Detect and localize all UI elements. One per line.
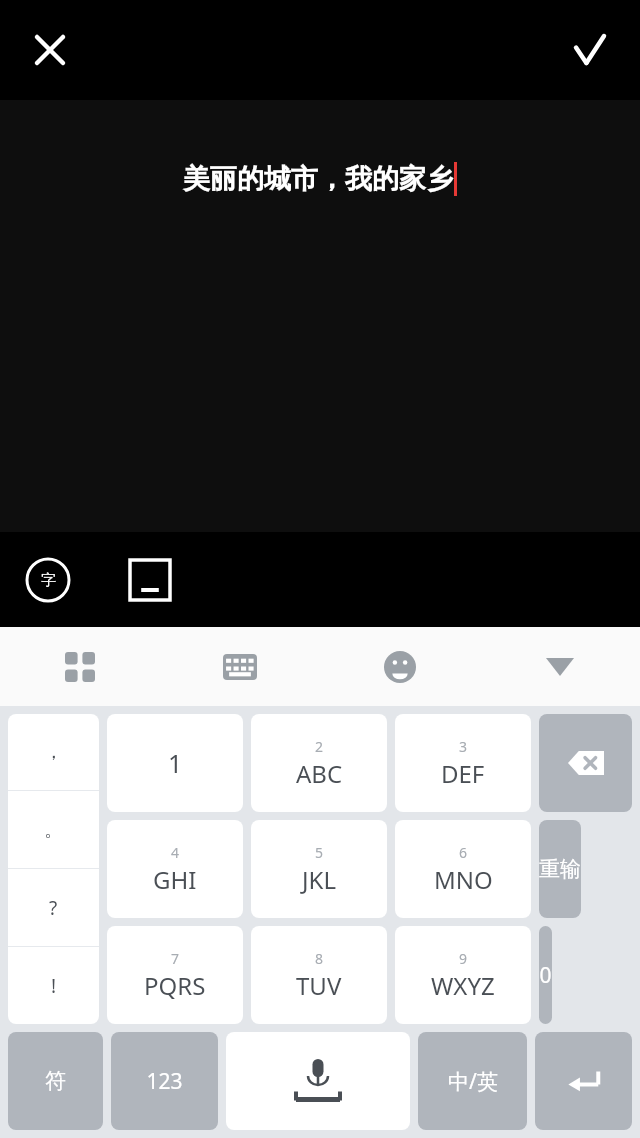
staticText: ! — [51, 973, 57, 999]
button[interactable]: 6 — [395, 820, 531, 918]
staticText: 4 — [171, 843, 180, 862]
staticText: 123 — [146, 1067, 183, 1096]
button[interactable]: 5 — [251, 820, 387, 918]
staticText: JKL — [302, 863, 336, 896]
button[interactable]: 8 — [251, 926, 387, 1024]
staticText: TUV — [296, 969, 342, 1002]
staticText: 符 — [45, 1068, 66, 1094]
staticText: WXYZ — [431, 969, 495, 1002]
button[interactable]: 4 — [107, 820, 243, 918]
button[interactable]: ? — [8, 869, 99, 946]
staticText: 美丽的城市，我的家乡 — [183, 162, 453, 196]
button[interactable]: 7 — [107, 926, 243, 1024]
staticText: ABC — [296, 757, 343, 790]
staticText: 字 — [41, 571, 56, 590]
button[interactable]: 中/英 — [418, 1032, 527, 1130]
staticText: 6 — [459, 843, 468, 862]
button[interactable]: ! — [8, 947, 99, 1024]
staticText: GHI — [153, 863, 197, 896]
button[interactable]: 123 — [111, 1032, 218, 1130]
button[interactable]: Close — [18, 18, 82, 82]
staticText: DEF — [441, 757, 485, 790]
button[interactable]: Confirm — [558, 18, 622, 82]
staticText: 8 — [315, 949, 324, 968]
staticText: MNO — [434, 863, 493, 896]
staticText: 2 — [315, 737, 324, 756]
button[interactable]: Space and voice input — [226, 1032, 410, 1130]
staticText: 0 — [539, 961, 552, 990]
staticText: 。 — [44, 818, 63, 842]
button[interactable]: 。 — [8, 791, 99, 868]
staticText: ? — [49, 895, 58, 921]
button[interactable]: Keyboard layout — [160, 627, 320, 706]
staticText: 5 — [315, 843, 324, 862]
button[interactable]: Caption position — [122, 552, 178, 608]
staticText: 9 — [459, 949, 468, 968]
button[interactable]: 3 — [395, 714, 531, 812]
staticText: 3 — [459, 737, 468, 756]
button[interactable]: Enter — [535, 1032, 632, 1130]
button[interactable]: 2 — [251, 714, 387, 812]
staticText: 重输 — [539, 856, 581, 882]
button[interactable]: Backspace — [539, 714, 632, 812]
button[interactable]: 1 — [107, 714, 243, 812]
button[interactable]: ， — [8, 714, 99, 790]
staticText: PQRS — [144, 969, 206, 1002]
button[interactable]: Emoji — [320, 627, 480, 706]
button[interactable]: 9 — [395, 926, 531, 1024]
staticText: 中/英 — [448, 1067, 498, 1096]
button[interactable]: 重输 — [539, 820, 581, 918]
button[interactable]: Hide keyboard — [480, 627, 640, 706]
button[interactable]: Text style — [20, 552, 76, 608]
staticText: 1 — [168, 746, 183, 780]
staticText: ， — [44, 740, 63, 764]
staticText: 7 — [171, 949, 180, 968]
button[interactable]: Apps — [0, 627, 160, 706]
button[interactable]: 符 — [8, 1032, 103, 1130]
button[interactable]: 0 — [539, 926, 552, 1024]
